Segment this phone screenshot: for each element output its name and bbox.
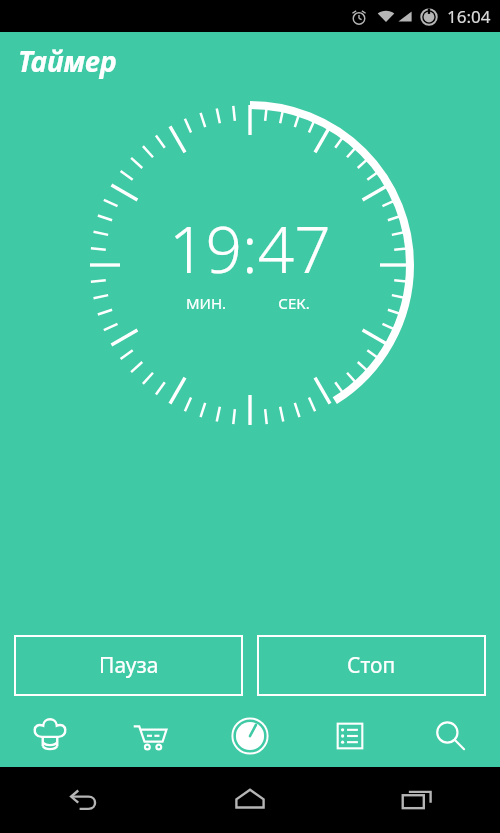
staticText: 19:47: [169, 205, 331, 292]
staticText: СЕК.: [259, 293, 329, 313]
staticText: Пауза: [99, 651, 159, 680]
button[interactable]: Back: [0, 767, 166, 833]
button[interactable]: Recents: [333, 767, 500, 833]
staticText: Стоп: [347, 651, 396, 680]
staticText: МИН.: [171, 293, 241, 313]
button[interactable]: Home: [166, 767, 333, 833]
button[interactable]: Search: [400, 705, 500, 767]
button[interactable]: Timer: [200, 705, 300, 767]
staticText: 16:04: [447, 5, 491, 28]
button[interactable]: Recipes: [0, 705, 100, 767]
button[interactable]: Shopping cart: [100, 705, 200, 767]
button[interactable]: Пауза: [14, 635, 243, 696]
button[interactable]: Стоп: [257, 635, 486, 696]
button[interactable]: List: [300, 705, 400, 767]
staticText: Таймер: [18, 42, 117, 80]
